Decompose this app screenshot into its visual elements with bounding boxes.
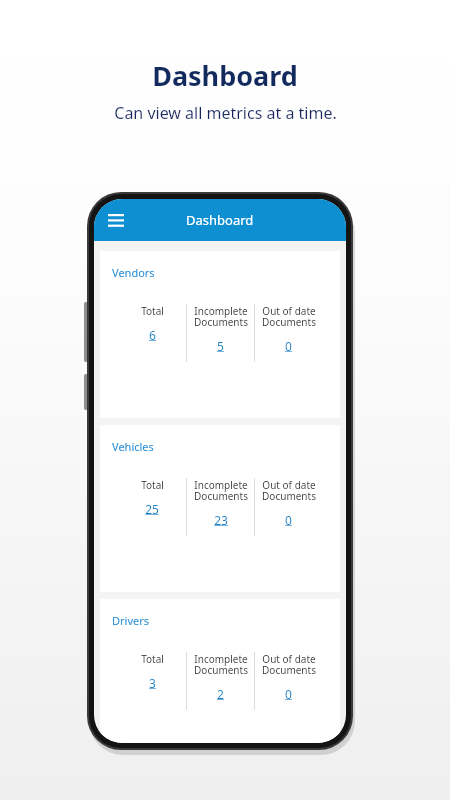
staticText: Out of date Documents: [262, 304, 316, 329]
staticText: Total: [141, 652, 164, 666]
staticText: Vendors: [112, 265, 155, 280]
staticText: 25: [145, 501, 159, 517]
button[interactable]: Out of date Documents: [255, 304, 322, 362]
button[interactable]: Drivers: [100, 599, 340, 743]
staticText: 5: [217, 338, 224, 354]
button[interactable]: Open navigation menu: [100, 204, 132, 236]
staticText: Can view all metrics at a time.: [114, 102, 337, 124]
button[interactable]: Incomplete Documents: [187, 652, 254, 710]
staticText: Incomplete Documents: [194, 304, 248, 329]
button[interactable]: Total: [118, 652, 186, 710]
button[interactable]: Vehicles: [100, 425, 340, 592]
staticText: Total: [141, 478, 164, 492]
button[interactable]: Out of date Documents: [255, 478, 322, 536]
staticText: 0: [285, 512, 292, 528]
staticText: 6: [149, 327, 156, 343]
staticText: 0: [285, 686, 292, 702]
staticText: Total: [141, 304, 164, 318]
staticText: 2: [217, 686, 224, 702]
button[interactable]: Out of date Documents: [255, 652, 322, 710]
staticText: Out of date Documents: [262, 652, 316, 677]
button[interactable]: Incomplete Documents: [187, 304, 254, 362]
other: Volume button: [84, 302, 89, 362]
staticText: 0: [285, 338, 292, 354]
button[interactable]: Total: [118, 304, 186, 362]
staticText: 23: [214, 512, 228, 528]
button[interactable]: Incomplete Documents: [187, 478, 254, 536]
button[interactable]: Vendors: [100, 251, 340, 418]
staticText: Incomplete Documents: [194, 652, 248, 677]
other: Power button: [84, 374, 89, 410]
staticText: Dashboard: [152, 57, 298, 94]
staticText: 3: [149, 675, 156, 691]
staticText: Out of date Documents: [262, 478, 316, 503]
staticText: Vehicles: [112, 439, 154, 454]
staticText: Drivers: [112, 613, 150, 628]
button[interactable]: Total: [118, 478, 186, 536]
staticText: Dashboard: [186, 211, 254, 229]
staticText: Incomplete Documents: [194, 478, 248, 503]
